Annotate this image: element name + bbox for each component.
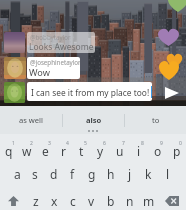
- staticText: I can see it from my place too!: [31, 87, 150, 98]
- button[interactable]: as well: [0, 106, 62, 134]
- staticText: 2: [30, 140, 33, 147]
- button[interactable]: c: [63, 193, 82, 209]
- button[interactable]: g: [82, 166, 101, 182]
- staticText: @bobbytaylor: [30, 33, 71, 41]
- staticText: l: [166, 166, 170, 182]
- staticText: p: [173, 143, 181, 159]
- button[interactable]: 4: [54, 140, 72, 156]
- staticText: 0: [179, 140, 182, 147]
- button[interactable]: 1: [0, 140, 18, 156]
- button[interactable]: l: [158, 166, 177, 182]
- button[interactable]: f: [63, 166, 82, 182]
- staticText: f: [70, 166, 75, 182]
- staticText: t: [79, 143, 84, 159]
- button[interactable]: Backspace: [158, 192, 186, 210]
- button[interactable]: 2: [18, 140, 36, 156]
- staticText: g: [88, 166, 96, 182]
- staticText: y: [97, 143, 104, 159]
- button[interactable]: s: [26, 166, 44, 182]
- staticText: 3: [48, 140, 51, 147]
- staticText: h: [107, 166, 115, 182]
- staticText: j: [128, 166, 132, 182]
- button[interactable]: 9: [148, 140, 167, 156]
- button[interactable]: 7: [110, 140, 129, 156]
- button[interactable]: z: [27, 193, 45, 209]
- staticText: o: [154, 143, 162, 159]
- staticText: z: [33, 193, 39, 209]
- staticText: b: [107, 193, 115, 209]
- staticText: w: [22, 143, 32, 159]
- button[interactable]: 5: [72, 140, 91, 156]
- button[interactable]: b: [101, 193, 120, 209]
- staticText: 1: [12, 140, 15, 147]
- staticText: 6: [103, 140, 106, 147]
- staticText: c: [70, 193, 76, 209]
- button[interactable]: k: [139, 166, 158, 182]
- staticText: r: [61, 143, 66, 159]
- staticText: also: [86, 115, 102, 125]
- staticText: 4: [66, 140, 69, 147]
- button[interactable]: a: [8, 166, 26, 182]
- button[interactable]: j: [120, 166, 139, 182]
- staticText: Looks Awesome: [29, 41, 94, 53]
- button[interactable]: I can see it from my place too!: [27, 82, 152, 101]
- staticText: @josephinetaylor: [30, 58, 80, 66]
- staticText: s: [32, 166, 38, 182]
- button[interactable]: v: [82, 193, 101, 209]
- staticText: n: [126, 193, 134, 209]
- staticText: Wow: [29, 66, 50, 79]
- button[interactable]: @bobbytaylor: [27, 32, 95, 53]
- staticText: 5: [84, 140, 87, 147]
- button[interactable]: 3: [36, 140, 54, 156]
- button[interactable]: @josephinetaylor: [27, 57, 80, 79]
- button[interactable]: x: [45, 193, 63, 209]
- staticText: to: [152, 115, 160, 125]
- button[interactable]: h: [101, 166, 120, 182]
- button[interactable]: 8: [129, 140, 148, 156]
- button[interactable]: also: [63, 106, 124, 134]
- staticText: 9: [160, 140, 163, 147]
- staticText: 7: [122, 140, 125, 147]
- staticText: e: [42, 143, 49, 159]
- staticText: i: [137, 143, 141, 159]
- staticText: d: [50, 166, 58, 182]
- staticText: x: [51, 193, 58, 209]
- button[interactable]: Shift: [0, 192, 27, 210]
- staticText: v: [88, 193, 95, 209]
- staticText: q: [5, 143, 13, 159]
- button[interactable]: d: [44, 166, 63, 182]
- staticText: k: [145, 166, 152, 182]
- button[interactable]: m: [139, 193, 158, 209]
- staticText: u: [116, 143, 124, 159]
- button[interactable]: n: [120, 193, 139, 209]
- button[interactable]: to: [125, 106, 186, 134]
- staticText: m: [143, 193, 155, 209]
- staticText: a: [14, 166, 21, 182]
- staticText: as well: [19, 115, 44, 125]
- button[interactable]: 0: [167, 140, 186, 156]
- button[interactable]: 6: [91, 140, 110, 156]
- button[interactable]: Send: [160, 81, 183, 104]
- staticText: 8: [141, 140, 144, 147]
